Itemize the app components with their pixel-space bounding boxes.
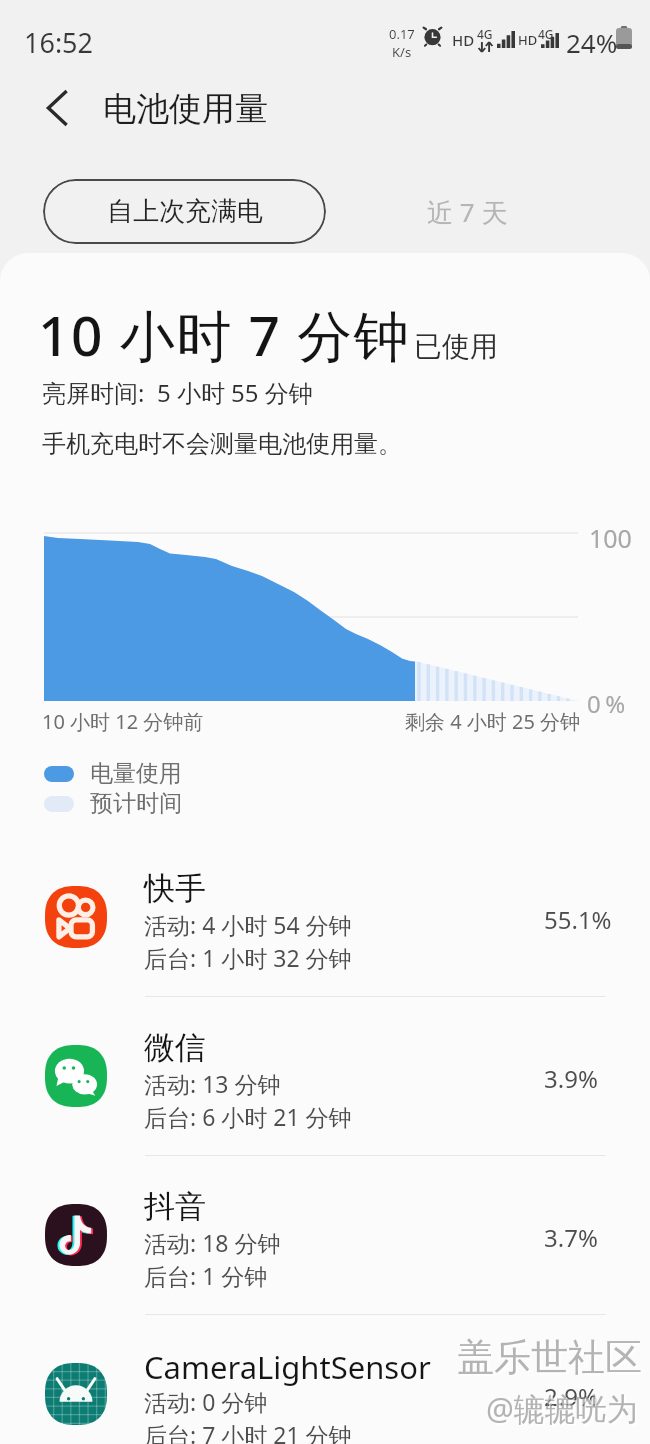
staticText: CameraLightSensor [144, 1346, 431, 1388]
staticText: 已使用 [414, 329, 498, 364]
staticText: 活动: 0 分钟 [144, 1386, 268, 1417]
staticText: 剩余 4 小时 25 分钟 [405, 708, 581, 735]
staticText: 抖音 [144, 1187, 206, 1226]
staticText: 后台: 7 小时 21 分钟 [144, 1419, 352, 1444]
staticText: 0.17 [389, 25, 415, 43]
staticText: 10 小时 12 分钟前 [42, 708, 204, 735]
staticText: 后台: 1 小时 32 分钟 [144, 942, 352, 973]
staticText: @辘辘咣为 [486, 1387, 638, 1429]
staticText: 近 7 天 [427, 194, 508, 230]
staticText: 活动: 18 分钟 [144, 1227, 281, 1258]
staticText: 快手 [144, 869, 206, 908]
staticText: 活动: 4 小时 54 分钟 [144, 909, 352, 940]
button[interactable]: 微信 [0, 997, 650, 1155]
button[interactable]: 抖音 [0, 1156, 650, 1314]
button[interactable]: Back [32, 84, 80, 132]
button[interactable]: 自上次充满电 [43, 179, 326, 244]
staticText: 0 % [587, 687, 625, 720]
staticText: 100 [589, 521, 632, 555]
staticText: 后台: 6 小时 21 分钟 [144, 1101, 352, 1132]
staticText: 3.9% [544, 1062, 598, 1095]
staticText: 16:52 [24, 24, 94, 61]
staticText: 后台: 1 分钟 [144, 1260, 268, 1291]
staticText: 24% [566, 25, 618, 60]
button[interactable]: 近 7 天 [372, 179, 562, 244]
staticText: 55.1% [544, 903, 612, 936]
staticText: 手机充电时不会测量电池使用量。 [42, 429, 402, 459]
staticText: 4G [538, 26, 554, 42]
staticText: @辘辘咣为 [488, 1389, 640, 1431]
staticText: 电量使用 [90, 759, 182, 788]
staticText: K/s [392, 43, 412, 61]
staticText: 电池使用量 [103, 88, 268, 130]
staticText: 亮屏时间: 5 小时 55 分钟 [42, 376, 313, 409]
staticText: 10 小时 7 分钟 [38, 297, 411, 372]
staticText: HD [518, 31, 538, 49]
staticText: 预计时间 [90, 789, 182, 818]
staticText: HD [452, 30, 475, 50]
staticText: 盖乐世社区 [459, 1336, 644, 1383]
staticText: 4G [477, 26, 493, 42]
staticText: 微信 [144, 1028, 206, 1067]
staticText: 自上次充满电 [107, 195, 263, 228]
button[interactable]: CameraLightSensor [0, 1315, 650, 1444]
staticText: 活动: 13 分钟 [144, 1068, 281, 1099]
staticText: 盖乐世社区 [457, 1334, 642, 1381]
staticText: 3.7% [544, 1221, 598, 1254]
button[interactable]: 快手 [0, 838, 650, 996]
staticText: 2.9% [544, 1380, 598, 1413]
